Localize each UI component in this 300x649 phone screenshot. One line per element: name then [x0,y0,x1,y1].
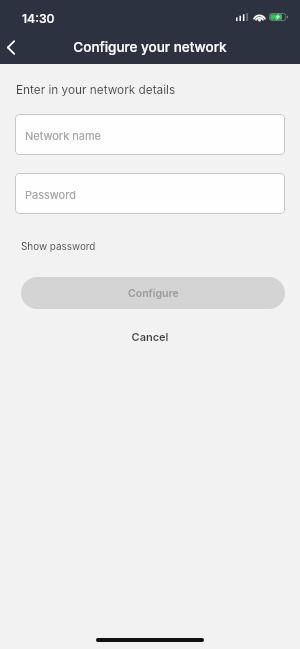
button[interactable]: Network name [15,114,285,155]
staticText: Enter in your network details [16,83,176,97]
staticText: Password [25,188,76,201]
button[interactable]: Password [15,173,285,214]
button[interactable]: Configure [21,277,285,309]
staticText: Network name [25,129,102,142]
staticText: Configure [128,287,179,300]
button[interactable]: Cancel [0,330,300,343]
staticText: Configure your network [0,39,300,55]
button[interactable]: Back [0,33,29,62]
button[interactable]: Show password [21,240,96,252]
staticText: 14:30 [22,11,55,26]
